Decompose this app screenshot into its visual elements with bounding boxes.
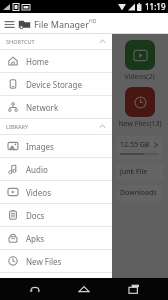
staticText: File Manager (34, 18, 89, 30)
staticText: SHORTCUT (6, 38, 99, 45)
staticText: Audio (26, 164, 48, 175)
button[interactable]: 12.55 GB (116, 136, 163, 159)
button[interactable]: Open navigation drawer (2, 17, 16, 31)
button[interactable]: Home (0, 50, 112, 72)
button[interactable]: Junk File (116, 164, 163, 180)
staticText: Videos(2) (124, 72, 155, 82)
button[interactable]: Downloads (116, 185, 163, 201)
button[interactable]: Images (0, 135, 112, 157)
button[interactable]: LIBRARY (0, 119, 112, 134)
button[interactable]: Home (69, 278, 99, 300)
button[interactable]: Audio (0, 158, 112, 180)
button[interactable]: Back (20, 278, 50, 300)
staticText: Images (26, 141, 54, 152)
button[interactable]: Videos(2) (125, 40, 155, 70)
staticText: Home (26, 56, 49, 67)
staticText: Videos (26, 187, 51, 198)
staticText: Apks (26, 233, 45, 244)
button[interactable]: Videos (0, 181, 112, 203)
button[interactable]: Recent apps (119, 278, 149, 300)
button[interactable]: Apks (0, 227, 112, 249)
staticText: 11:19 (145, 1, 166, 12)
button[interactable]: Docs (0, 204, 112, 226)
staticText: LIBRARY (6, 123, 99, 130)
staticText: Downloads (120, 188, 157, 198)
button[interactable]: Network (0, 96, 112, 118)
button[interactable]: SHORTCUT (0, 34, 112, 49)
staticText: New Files(13) (118, 119, 162, 129)
button[interactable]: New Files(13) (125, 87, 155, 117)
staticText: Device Storage (26, 79, 82, 90)
staticText: Junk File (120, 167, 148, 177)
button[interactable]: New Files (0, 250, 112, 272)
staticText: New Files (26, 256, 62, 267)
staticText: Network (26, 102, 59, 113)
staticText: HD (89, 18, 97, 25)
staticText: Docs (26, 210, 45, 221)
staticText: 12.55 GB (120, 140, 153, 150)
button[interactable]: Device Storage (0, 73, 112, 95)
